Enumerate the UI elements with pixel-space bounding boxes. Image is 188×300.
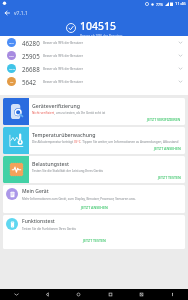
staticText: GPU <box>9 54 15 57</box>
button[interactable]: CPU <box>0 36 188 49</box>
staticText: Besser als 99% der Benutzer <box>43 67 83 71</box>
staticText: Testen Sie die Stabilität der Leistung I… <box>32 169 104 173</box>
button[interactable]: Screenshot <box>131 289 151 300</box>
staticText: Besser als 99% der Benutzer <box>43 54 83 58</box>
staticText: Funktionstest <box>22 218 55 225</box>
staticText: Nicht verifiziert, um zu testen, ob Ihr … <box>32 111 106 115</box>
staticText: Besser als 99% der Benutzer <box>80 34 123 36</box>
button[interactable]: Funktionstest <box>3 215 185 249</box>
staticText: 104515 <box>80 19 117 33</box>
button[interactable]: MEM <box>0 62 188 75</box>
button[interactable]: Hide <box>6 289 26 300</box>
staticText: 46280 <box>22 39 40 47</box>
staticText: 11:46 <box>175 1 186 7</box>
staticText: Besser als 99% der Benutzer <box>43 80 83 84</box>
button[interactable]: More <box>162 289 182 300</box>
staticText: Temperaturüberwachung <box>32 131 96 138</box>
staticText: v7.1.1 <box>14 10 28 17</box>
staticText: JETZT ANSEHEN <box>81 205 108 210</box>
button[interactable]: Temperaturüberwachung <box>3 127 185 154</box>
staticText: Die Akkutemperatur beträgt 35°C. Tippen … <box>32 140 182 144</box>
staticText: Besser als 99% der Benutzer <box>43 41 83 45</box>
button[interactable]: GPU <box>0 49 188 62</box>
staticText: JETZT VERIFIZIEREN <box>147 117 181 122</box>
button[interactable]: Recents <box>100 289 120 300</box>
staticText: 26688 <box>22 65 40 73</box>
button[interactable]: Back <box>0 7 14 19</box>
staticText: Mein Gerät <box>22 188 49 195</box>
button[interactable]: Mein Gerät <box>3 185 185 213</box>
button[interactable]: Geräteverifizierung <box>3 98 185 125</box>
staticText: JETZT ANSEHEN <box>154 146 181 151</box>
staticText: Geräteverifizierung <box>32 102 80 109</box>
button[interactable]: UX <box>0 75 188 88</box>
staticText: JETZT TESTEN <box>83 238 106 243</box>
button[interactable]: Belastungstest <box>3 156 185 183</box>
staticText: CPU <box>9 41 14 44</box>
staticText: Belastungstest <box>32 160 69 167</box>
staticText: 77% <box>156 2 164 7</box>
staticText: Testen Sie die Funktionen Ihres Geräts <box>22 227 76 231</box>
staticText: 5642 <box>22 78 37 86</box>
staticText: MEM <box>9 67 15 70</box>
staticText: 25905 <box>22 52 40 60</box>
button[interactable]: Back <box>37 289 57 300</box>
staticText: JETZT TESTEN <box>158 175 181 180</box>
staticText: UX <box>10 80 14 83</box>
button[interactable]: Home <box>68 289 88 300</box>
staticText: Mehr Informationen zum Gerät, zum Displa… <box>22 197 136 201</box>
